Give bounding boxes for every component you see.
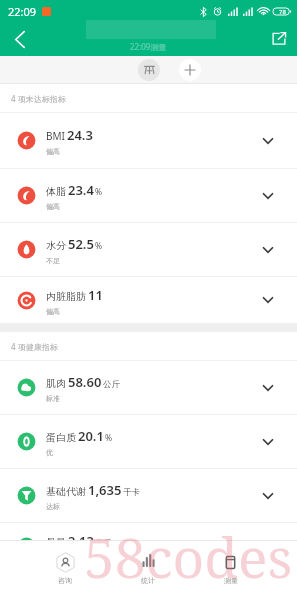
button[interactable]: 测量	[189, 541, 272, 595]
staticText: 公斤	[95, 538, 112, 549]
button[interactable]: 水分	[0, 223, 297, 276]
staticText: 52.5	[68, 235, 94, 253]
staticText: %	[95, 240, 103, 252]
staticText: 优	[46, 448, 53, 457]
staticText: 达标	[46, 502, 60, 511]
button[interactable]: 咨询	[24, 541, 106, 595]
staticText: 4 项未达标指标	[11, 93, 66, 104]
button[interactable]: Back	[4, 23, 36, 55]
staticText: %	[105, 432, 113, 444]
button[interactable]: Weight scale	[138, 59, 160, 81]
staticText: 基础代谢	[46, 485, 86, 498]
staticText: 1,635	[88, 481, 122, 499]
staticText: 标准	[46, 553, 60, 562]
staticText: 58codes	[84, 519, 293, 594]
button[interactable]: Add measurement	[179, 59, 201, 81]
staticText: 24.3	[67, 126, 93, 144]
staticText: 体脂	[46, 185, 66, 198]
button[interactable]: BMI	[0, 113, 297, 168]
staticText: 咨询	[58, 576, 72, 585]
button[interactable]: 蛋白质	[0, 415, 297, 468]
staticText: 78	[279, 8, 286, 16]
staticText: 4 项健康指标	[11, 341, 58, 352]
staticText: 公斤	[103, 379, 120, 390]
staticText: 偏高	[46, 147, 60, 156]
staticText: 标准	[46, 394, 60, 403]
staticText: 偏高	[46, 202, 60, 211]
button[interactable]: 基础代谢	[0, 469, 297, 522]
button[interactable]: 体脂	[0, 169, 297, 222]
staticText: 22:09	[8, 4, 37, 19]
staticText: 肌肉	[46, 377, 66, 390]
button[interactable]: Share	[263, 22, 295, 54]
staticText: 水分	[46, 239, 66, 252]
staticText: 骨量	[46, 536, 66, 549]
staticText: 蛋白质	[46, 431, 76, 444]
staticText: 偏高	[46, 307, 60, 316]
staticText: %	[95, 186, 103, 198]
staticText: 内脏脂肪	[46, 290, 86, 303]
staticText: 统计	[141, 576, 155, 585]
staticText: 千卡	[123, 487, 140, 498]
staticText: 测量	[224, 576, 238, 585]
staticText: 20.1	[78, 427, 104, 445]
button[interactable]: 骨量	[0, 523, 297, 569]
staticText: 22:09测量	[130, 41, 167, 52]
staticText: BMI	[46, 129, 65, 143]
staticText: 不足	[46, 256, 60, 265]
staticText: 3.13	[68, 532, 94, 550]
staticText: 23.4	[68, 181, 94, 199]
staticText: 11	[88, 286, 103, 304]
staticText: 58.60	[68, 373, 102, 391]
button[interactable]: 统计	[106, 541, 189, 595]
button[interactable]: 内脏脂肪	[0, 277, 297, 323]
button[interactable]: 肌肉	[0, 361, 297, 414]
